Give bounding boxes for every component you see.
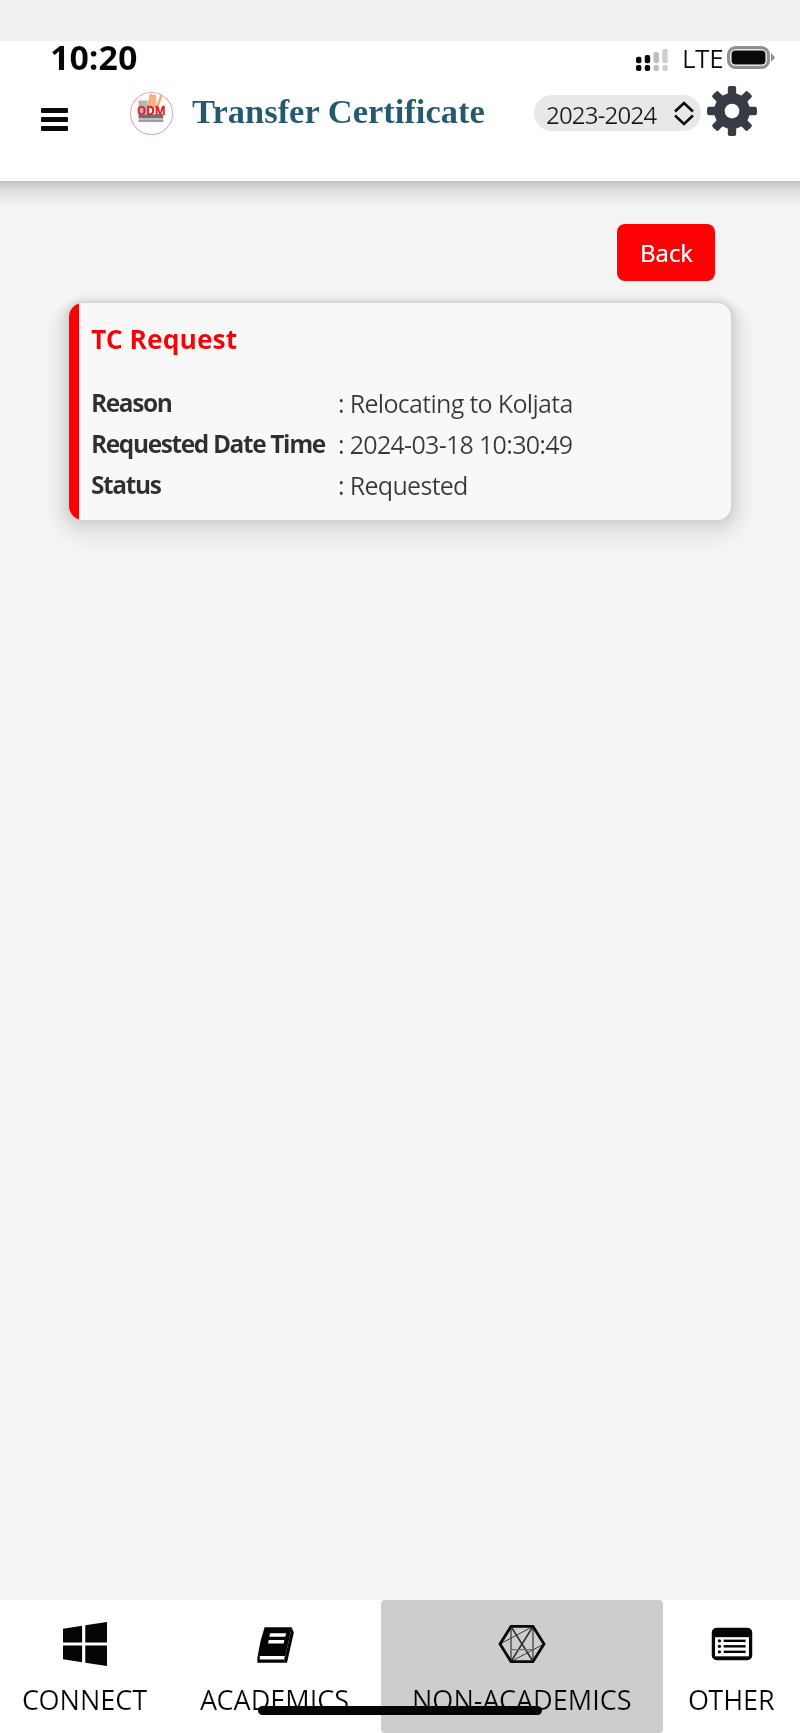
staticText: 2023-2024 (546, 98, 657, 131)
button[interactable]: Back (617, 224, 715, 281)
staticText: CONNECT (22, 1681, 148, 1718)
staticText: : Requested (338, 468, 468, 502)
staticText: Transfer Certificate (192, 92, 485, 130)
staticText: NON-ACADEMICS (412, 1681, 632, 1718)
button[interactable]: Settings (707, 86, 757, 136)
button[interactable]: ACADEMICS (169, 1600, 381, 1733)
staticText: Requested Date Time (91, 427, 325, 460)
staticText: : 2024-03-18 10:30:49 (338, 427, 573, 461)
button[interactable]: Menu (26, 96, 82, 142)
button[interactable]: OTHER (663, 1600, 800, 1733)
staticText: ACADEMICS (200, 1681, 350, 1718)
staticText: Reason (91, 386, 172, 419)
button[interactable]: 2023-2024 (534, 95, 701, 131)
button[interactable]: TC Request (69, 303, 731, 520)
staticText: : Relocating to Koljata (338, 386, 573, 420)
staticText: ODM (137, 103, 166, 119)
staticText: LTE (682, 40, 724, 75)
staticText: Back (640, 236, 693, 269)
staticText: 10:20 (50, 34, 138, 80)
button[interactable]: CONNECT (0, 1600, 169, 1733)
staticText: TC Request (91, 321, 238, 357)
staticText: Status (91, 468, 161, 501)
button[interactable]: NON-ACADEMICS (381, 1600, 663, 1733)
staticText: OTHER (688, 1681, 775, 1718)
